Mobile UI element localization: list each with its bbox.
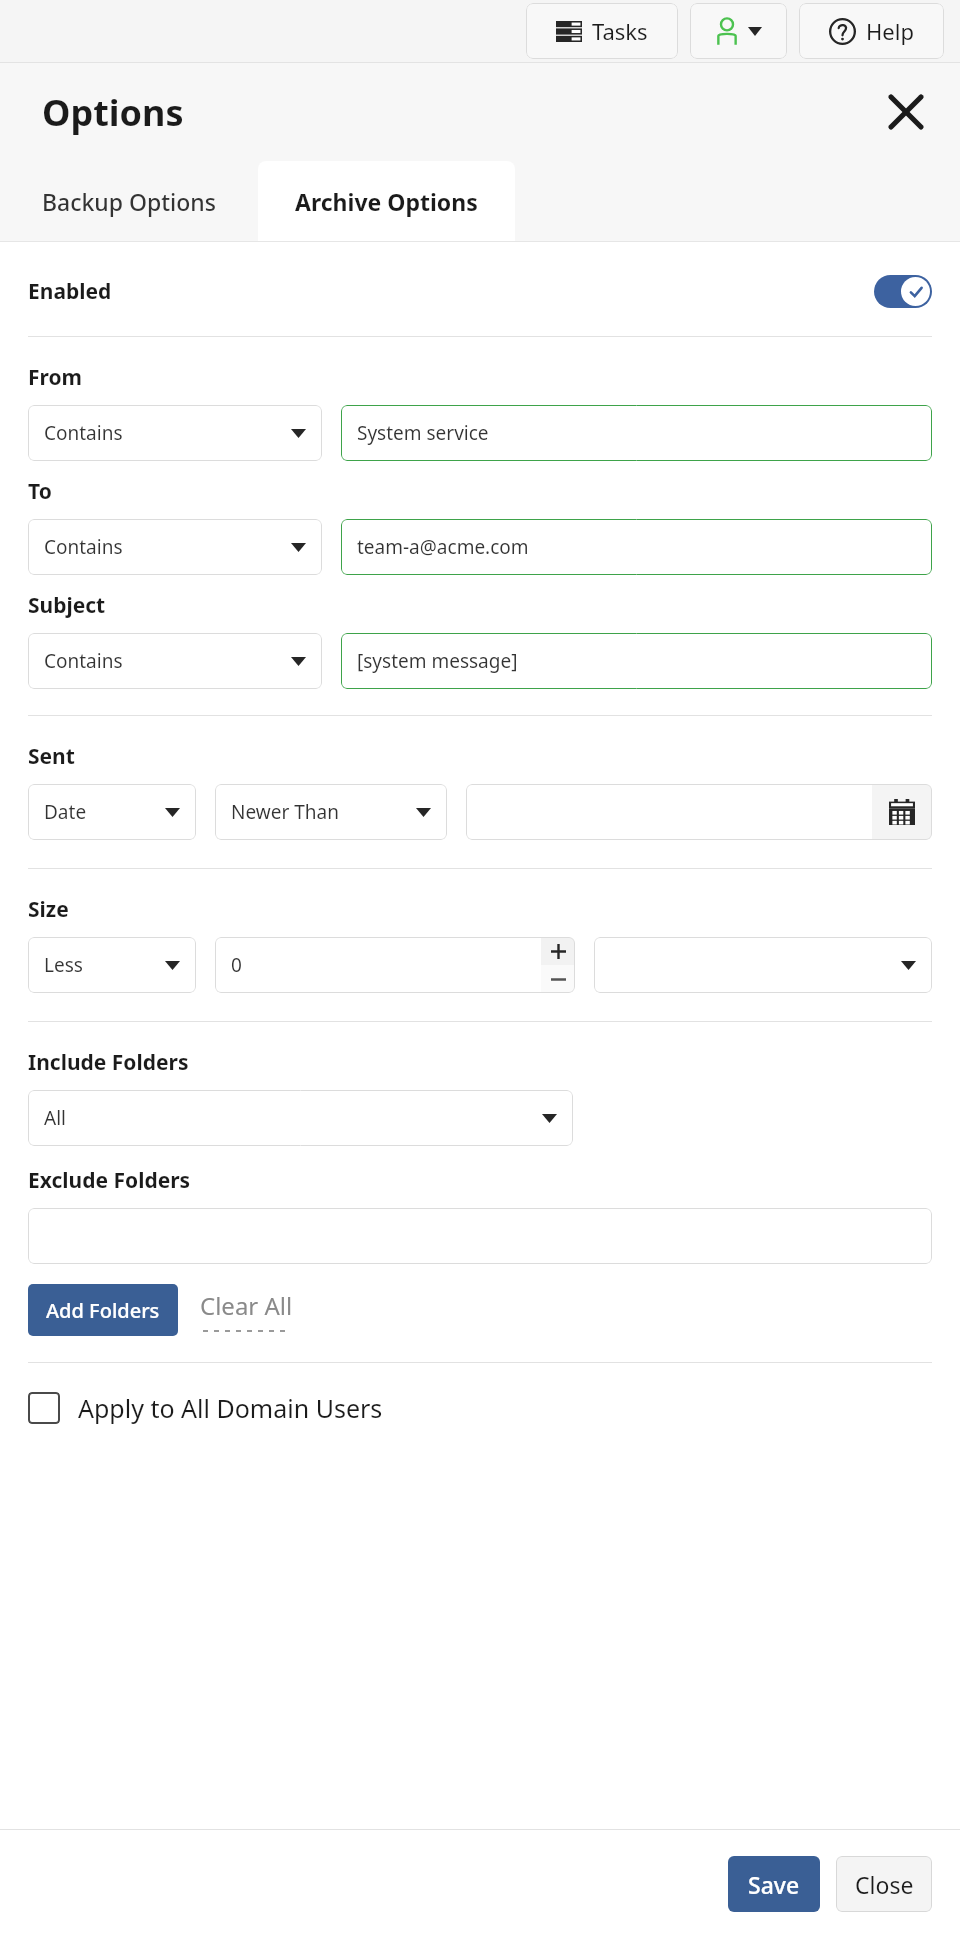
button[interactable]: Help xyxy=(799,3,944,59)
button[interactable]: System service xyxy=(341,405,932,461)
button[interactable]: Less xyxy=(28,937,196,993)
button[interactable]: Close xyxy=(836,1856,932,1912)
staticText: [system message] xyxy=(357,648,518,674)
staticText: Contains xyxy=(44,420,123,446)
staticText: Save xyxy=(748,1869,800,1900)
button[interactable]: Backup Options xyxy=(0,161,258,241)
button[interactable]: Save xyxy=(728,1856,820,1912)
staticText: Size xyxy=(28,895,69,924)
staticText: Archive Options xyxy=(295,186,478,217)
button[interactable]: Clear All xyxy=(196,1285,297,1336)
button[interactable]: Contains xyxy=(28,633,322,689)
button[interactable]: Pick date xyxy=(872,784,932,840)
button[interactable]: 0 xyxy=(215,937,575,993)
staticText: Apply to All Domain Users xyxy=(78,1391,383,1425)
button[interactable]: Decrease xyxy=(541,965,575,993)
staticText: Exclude Folders xyxy=(28,1166,191,1195)
staticText: Date xyxy=(44,799,87,825)
staticText: Contains xyxy=(44,534,123,560)
staticText: System service xyxy=(357,420,489,446)
button[interactable]: Pick date xyxy=(466,784,932,840)
button[interactable]: Archive Options xyxy=(258,161,515,241)
staticText: Include Folders xyxy=(28,1048,189,1077)
staticText: Subject xyxy=(28,591,106,620)
button[interactable]: Close xyxy=(880,86,932,138)
staticText: Newer Than xyxy=(231,799,339,825)
button[interactable]: team-a@acme.com xyxy=(341,519,932,575)
staticText: team-a@acme.com xyxy=(357,534,529,560)
staticText: Options xyxy=(42,88,184,137)
button[interactable] xyxy=(28,1208,932,1264)
staticText: Add Folders xyxy=(46,1297,160,1324)
button[interactable]: Contains xyxy=(28,405,322,461)
button[interactable]: Add Folders xyxy=(28,1284,178,1336)
button[interactable]: Enabled toggle xyxy=(874,275,932,308)
button[interactable]: Contains xyxy=(28,519,322,575)
staticText: Backup Options xyxy=(42,186,216,217)
staticText: Clear All xyxy=(200,1289,293,1322)
staticText: Less xyxy=(44,952,83,978)
staticText: Enabled xyxy=(28,277,112,306)
staticText: To xyxy=(28,477,52,506)
staticText: All xyxy=(44,1105,66,1131)
button[interactable]: [system message] xyxy=(341,633,932,689)
staticText: Tasks xyxy=(592,16,648,46)
button[interactable]: Account menu xyxy=(690,3,787,59)
button[interactable]: Apply to All Domain Users xyxy=(28,1391,383,1425)
staticText: From xyxy=(28,363,83,392)
staticText: Sent xyxy=(28,742,75,771)
button[interactable]: All xyxy=(28,1090,573,1146)
button[interactable]: Tasks xyxy=(526,3,678,59)
staticText: Help xyxy=(866,16,914,46)
button[interactable] xyxy=(594,937,932,993)
staticText: Close xyxy=(855,1869,914,1900)
button[interactable]: Increase xyxy=(541,937,575,965)
button[interactable]: Newer Than xyxy=(215,784,447,840)
staticText: 0 xyxy=(231,952,242,978)
staticText: Contains xyxy=(44,648,123,674)
button[interactable]: Date xyxy=(28,784,196,840)
